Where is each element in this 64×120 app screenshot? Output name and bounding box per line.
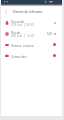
staticText: Rucak xyxy=(11,30,21,34)
staticText: Vecera uskoro xyxy=(11,43,34,47)
staticText: Dorucak xyxy=(11,19,24,23)
button[interactable]: Dorucak xyxy=(1,17,62,28)
staticText: Uzina dan xyxy=(11,54,27,58)
button[interactable]: Back xyxy=(2,8,10,16)
staticText: 620 xyxy=(47,32,53,36)
staticText: 270 kcal | 08:10 xyxy=(11,23,34,27)
button[interactable]: Vecera uskoro xyxy=(1,39,62,50)
staticText: 640 kcal | 13:25 xyxy=(11,34,34,38)
staticText: Dnevnik ishrane xyxy=(13,9,43,14)
button[interactable]: Rucak xyxy=(1,28,62,39)
button[interactable]: Uzina dan xyxy=(1,50,62,61)
